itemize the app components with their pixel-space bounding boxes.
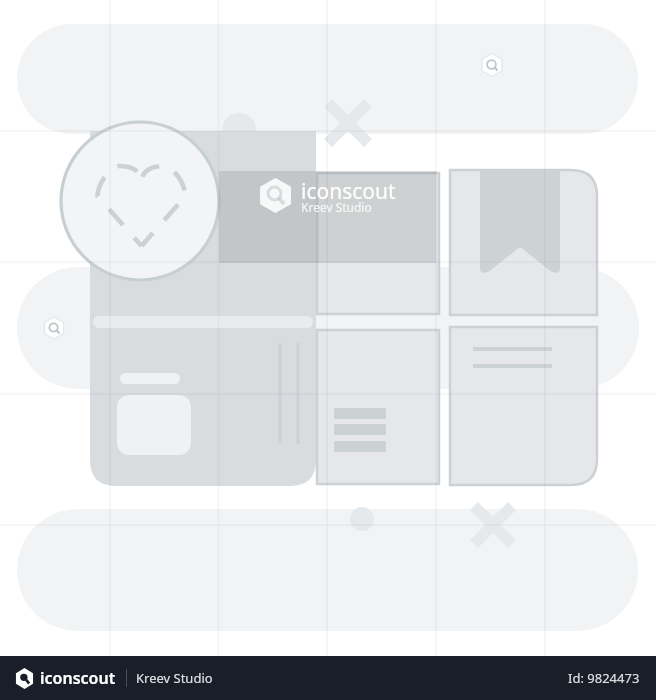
staticText: iconscout	[301, 177, 396, 206]
staticText: Kreev Studio	[301, 199, 372, 215]
button[interactable]: iconscout	[0, 656, 656, 700]
staticText: Kreev Studio	[136, 669, 213, 687]
staticText: iconscout	[40, 667, 116, 689]
staticText: Id: 9824473	[568, 669, 640, 687]
